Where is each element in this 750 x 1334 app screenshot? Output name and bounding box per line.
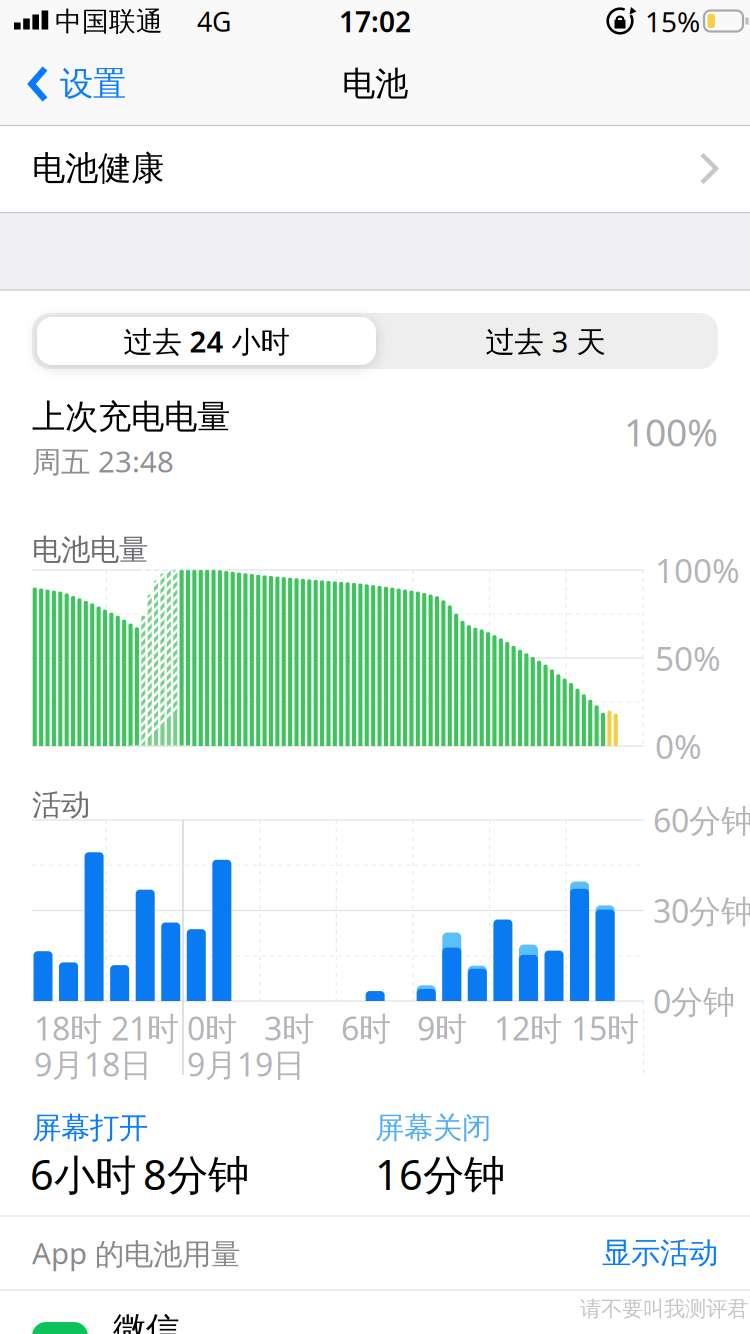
staticText: 显示活动 (602, 1235, 718, 1271)
staticText: 电池健康 (32, 148, 164, 189)
staticText: 3时 (264, 1007, 314, 1049)
staticText: 9月18日 (34, 1043, 152, 1085)
staticText: 18时 (34, 1007, 102, 1049)
staticText: 屏幕关闭 (375, 1110, 491, 1146)
button[interactable]: 过去 24 小时 (37, 317, 376, 365)
button[interactable]: 电池健康 (0, 125, 750, 211)
staticText: 50% (655, 636, 721, 680)
staticText: 0时 (187, 1007, 237, 1049)
staticText: 0% (655, 724, 702, 768)
staticText: 电池电量 (32, 532, 148, 568)
staticText: 15% (645, 3, 700, 40)
staticText: 17:02 (339, 3, 411, 40)
staticText: 6时 (341, 1007, 391, 1049)
staticText: 活动 (32, 787, 90, 823)
staticText: 9月19日 (187, 1043, 305, 1085)
staticText: 15时 (571, 1007, 639, 1049)
staticText: App 的电池用量 (32, 1233, 240, 1272)
staticText: 0分钟 (653, 980, 735, 1022)
staticText: 请不要叫我测评君 (580, 1296, 748, 1322)
staticText: 100% (655, 548, 740, 592)
button[interactable]: 微信 (0, 1308, 750, 1334)
staticText: 中国联通 (55, 5, 163, 38)
staticText: 6小时 8分钟 (30, 1147, 249, 1201)
staticText: 9时 (417, 1007, 467, 1049)
staticText: 屏幕打开 (32, 1110, 148, 1146)
staticText: 上次充电电量 (32, 396, 230, 437)
staticText: 16分钟 (375, 1147, 505, 1201)
staticText: 过去 3 天 (485, 321, 605, 360)
staticText: 60分钟 (653, 799, 750, 841)
staticText: 微信 (113, 1309, 179, 1334)
staticText: 周五 23:48 (32, 441, 174, 480)
staticText: 电池 (342, 63, 408, 104)
staticText: 21时 (111, 1007, 179, 1049)
staticText: 过去 24 小时 (123, 321, 289, 360)
button[interactable]: 返回设置 (28, 59, 126, 109)
button[interactable]: 过去 3 天 (376, 317, 715, 365)
staticText: 12时 (494, 1007, 562, 1049)
staticText: 设置 (60, 63, 126, 104)
staticText: 30分钟 (653, 889, 750, 932)
staticText: 4G (197, 4, 231, 39)
button[interactable]: 显示活动 (518, 1231, 718, 1275)
staticText: 100% (624, 407, 718, 457)
